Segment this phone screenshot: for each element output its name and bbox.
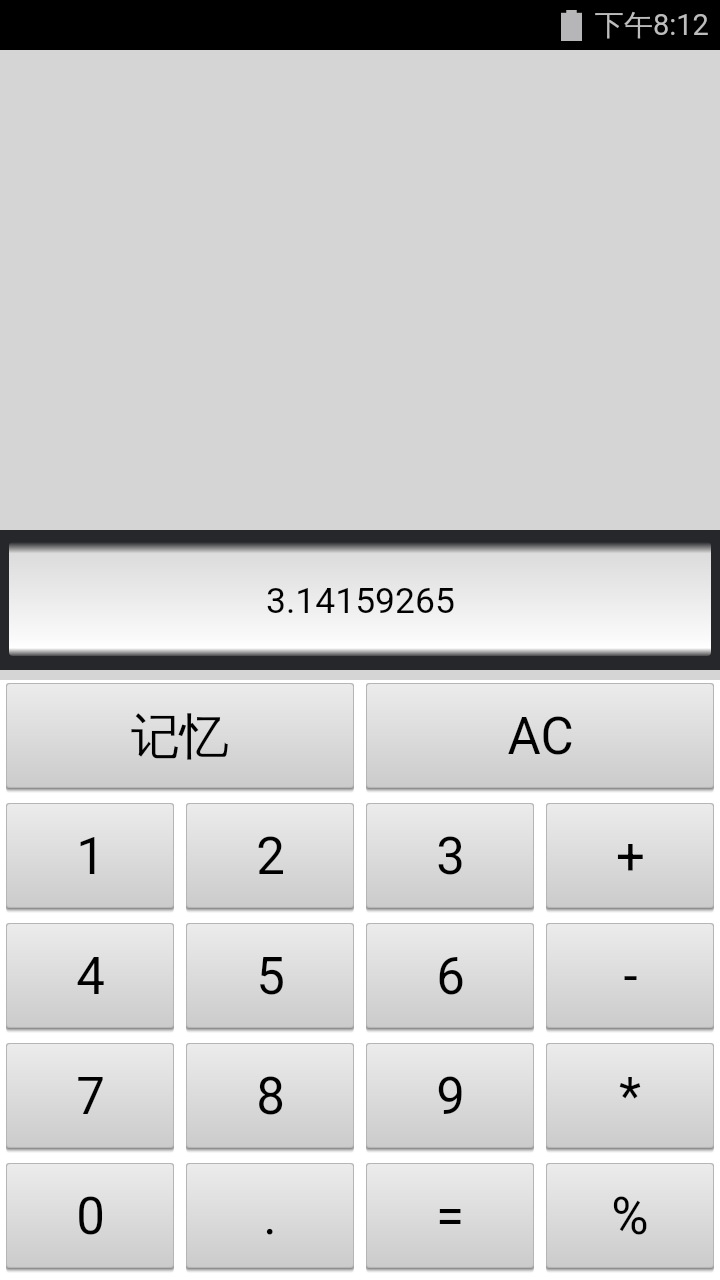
button[interactable]: 8	[186, 1043, 354, 1154]
button[interactable]: +	[546, 803, 714, 914]
staticText: 9	[436, 1067, 465, 1127]
staticText: 3.14159265	[266, 580, 455, 622]
button[interactable]: -	[546, 923, 714, 1034]
button[interactable]: =	[366, 1163, 534, 1274]
button[interactable]: .	[186, 1163, 354, 1274]
button[interactable]: 9	[366, 1043, 534, 1154]
button[interactable]: 6	[366, 923, 534, 1034]
button[interactable]: 1	[6, 803, 174, 914]
button[interactable]: 4	[6, 923, 174, 1034]
staticText: *	[619, 1067, 641, 1127]
other: Battery full	[561, 10, 582, 41]
button[interactable]: 0	[6, 1163, 174, 1274]
staticText: AC	[507, 707, 574, 767]
staticText: 3	[436, 827, 465, 887]
staticText: 记忆	[131, 706, 229, 768]
staticText: 7	[76, 1067, 105, 1127]
button[interactable]: 3	[366, 803, 534, 914]
staticText: -	[623, 947, 638, 1007]
staticText: %	[611, 1187, 649, 1247]
button[interactable]: *	[546, 1043, 714, 1154]
staticText: +	[616, 827, 645, 887]
staticText: .	[263, 1187, 277, 1247]
staticText: 0	[76, 1187, 105, 1247]
staticText: =	[436, 1187, 464, 1247]
staticText: 5	[256, 947, 285, 1007]
button[interactable]: 记忆	[6, 683, 354, 794]
staticText: 下午8:12	[595, 7, 709, 44]
staticText: 8	[256, 1067, 285, 1127]
staticText: 1	[76, 827, 105, 887]
staticText: 6	[436, 947, 465, 1007]
button[interactable]: 5	[186, 923, 354, 1034]
button[interactable]: 2	[186, 803, 354, 914]
staticText: 2	[256, 827, 285, 887]
button[interactable]: %	[546, 1163, 714, 1274]
button[interactable]: AC	[366, 683, 714, 794]
button[interactable]: 7	[6, 1043, 174, 1154]
staticText: 4	[76, 947, 105, 1007]
